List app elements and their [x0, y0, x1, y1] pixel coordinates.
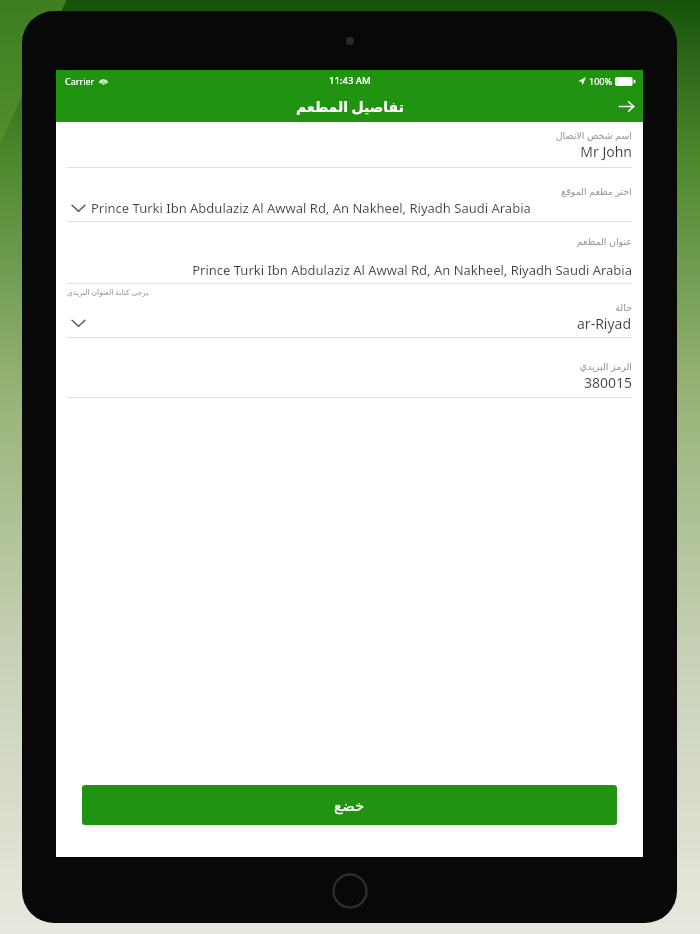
staticText: Mr John	[67, 142, 632, 161]
staticText: تفاصيل المطعم	[296, 97, 404, 116]
button[interactable]: Open dropdown	[67, 198, 632, 218]
button[interactable]: خضع	[82, 785, 617, 825]
button[interactable]: Forward	[609, 91, 643, 122]
staticText: عنوان المطعم	[67, 235, 632, 248]
staticText: حالة	[67, 302, 632, 313]
staticText: 100%	[589, 75, 612, 87]
button[interactable]: Open dropdown	[67, 198, 89, 218]
staticText: يرجى كتابة العنوان البريدي	[67, 287, 149, 297]
staticText: ar-Riyad	[577, 314, 632, 333]
staticText: Prince Turki Ibn Abdulaziz Al Awwal Rd, …	[67, 261, 632, 279]
staticText: الرمز البريدي	[67, 360, 632, 373]
staticText: 11:43 AM	[329, 74, 371, 87]
staticText: اختر مطعم الموقع	[67, 185, 632, 198]
staticText: Prince Turki Ibn Abdulaziz Al Awwal Rd, …	[91, 199, 531, 217]
staticText: اسم شخص الاتصال	[67, 129, 632, 142]
button[interactable]: Open dropdown	[67, 313, 89, 333]
button[interactable]: Open dropdown	[67, 313, 632, 333]
staticText: Carrier	[65, 75, 95, 87]
staticText: خضع	[334, 797, 365, 814]
staticText: 380015	[67, 373, 632, 392]
